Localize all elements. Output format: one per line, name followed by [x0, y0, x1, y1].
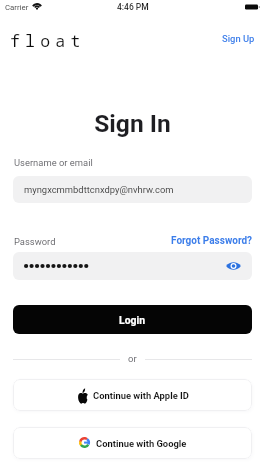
staticText: float: [10, 29, 86, 49]
staticText: Username or email: [14, 157, 93, 168]
staticText: Login: [119, 314, 146, 326]
button[interactable]: Sign Up: [222, 33, 255, 44]
staticText: Continue with Google: [96, 438, 187, 449]
staticText: or: [128, 353, 137, 364]
staticText: myngxcmmbdttcnxdpy@nvhrw.com: [24, 184, 174, 195]
button[interactable]: Show password: [13, 252, 252, 280]
button[interactable]: Login: [13, 305, 252, 334]
staticText: 4:46 PM: [117, 2, 149, 12]
button[interactable]: Show password: [224, 257, 242, 275]
button[interactable]: Continue with Apple ID: [13, 379, 252, 411]
staticText: Forgot Password?: [171, 235, 253, 247]
staticText: Password: [14, 236, 56, 247]
staticText: Carrier: [5, 3, 29, 12]
staticText: Sign In: [0, 109, 265, 138]
staticText: Sign Up: [222, 33, 255, 44]
button[interactable]: myngxcmmbdttcnxdpy@nvhrw.com: [13, 176, 252, 203]
staticText: Continue with Apple ID: [93, 390, 189, 401]
button[interactable]: Continue with Google: [13, 427, 252, 459]
button[interactable]: Forgot Password?: [171, 235, 253, 247]
